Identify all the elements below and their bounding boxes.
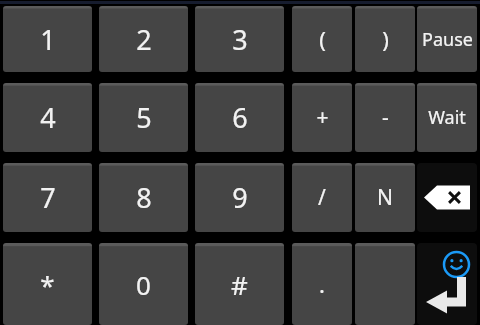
button[interactable]: Delete [417, 163, 477, 232]
button[interactable]: 0 [99, 243, 188, 325]
staticText: ) [382, 24, 389, 54]
button[interactable]: 6 [195, 83, 284, 152]
button[interactable]: 4 [3, 83, 92, 152]
button[interactable]: + [292, 83, 352, 152]
staticText: / [318, 183, 326, 212]
staticText: 8 [136, 179, 152, 216]
button[interactable]: - [355, 83, 415, 152]
staticText: N [377, 183, 393, 212]
button[interactable]: / [292, 163, 352, 232]
button[interactable]: 3 [195, 6, 284, 72]
button[interactable]: Wait [417, 83, 477, 152]
button[interactable]: 8 [99, 163, 188, 232]
staticText: . [319, 269, 325, 299]
button[interactable]: * [3, 243, 92, 325]
staticText: 1 [40, 21, 56, 58]
button[interactable]: . [292, 243, 352, 325]
staticText: # [231, 267, 248, 302]
staticText: + [316, 103, 329, 132]
staticText: ( [319, 24, 326, 54]
button[interactable]: 9 [195, 163, 284, 232]
button[interactable]: 1 [3, 6, 92, 72]
staticText: 0 [136, 267, 151, 302]
button[interactable]: ( [292, 6, 352, 72]
staticText: - [382, 103, 389, 132]
button[interactable]: N [355, 163, 415, 232]
staticText: 6 [232, 99, 248, 136]
staticText: 5 [136, 99, 152, 136]
button[interactable] [355, 243, 415, 325]
staticText: Wait [428, 105, 466, 130]
button[interactable]: 2 [99, 6, 188, 72]
staticText: 7 [40, 179, 56, 216]
button[interactable]: 7 [3, 163, 92, 232]
button[interactable]: Enter [417, 243, 477, 325]
button[interactable]: ) [355, 6, 415, 72]
staticText: 2 [136, 21, 152, 58]
staticText: * [40, 267, 55, 302]
staticText: Pause [422, 27, 473, 52]
staticText: 9 [232, 179, 248, 216]
button[interactable]: Pause [417, 6, 477, 72]
button[interactable]: 5 [99, 83, 188, 152]
staticText: 4 [40, 99, 56, 136]
button[interactable]: # [195, 243, 284, 325]
staticText: 3 [232, 21, 248, 58]
